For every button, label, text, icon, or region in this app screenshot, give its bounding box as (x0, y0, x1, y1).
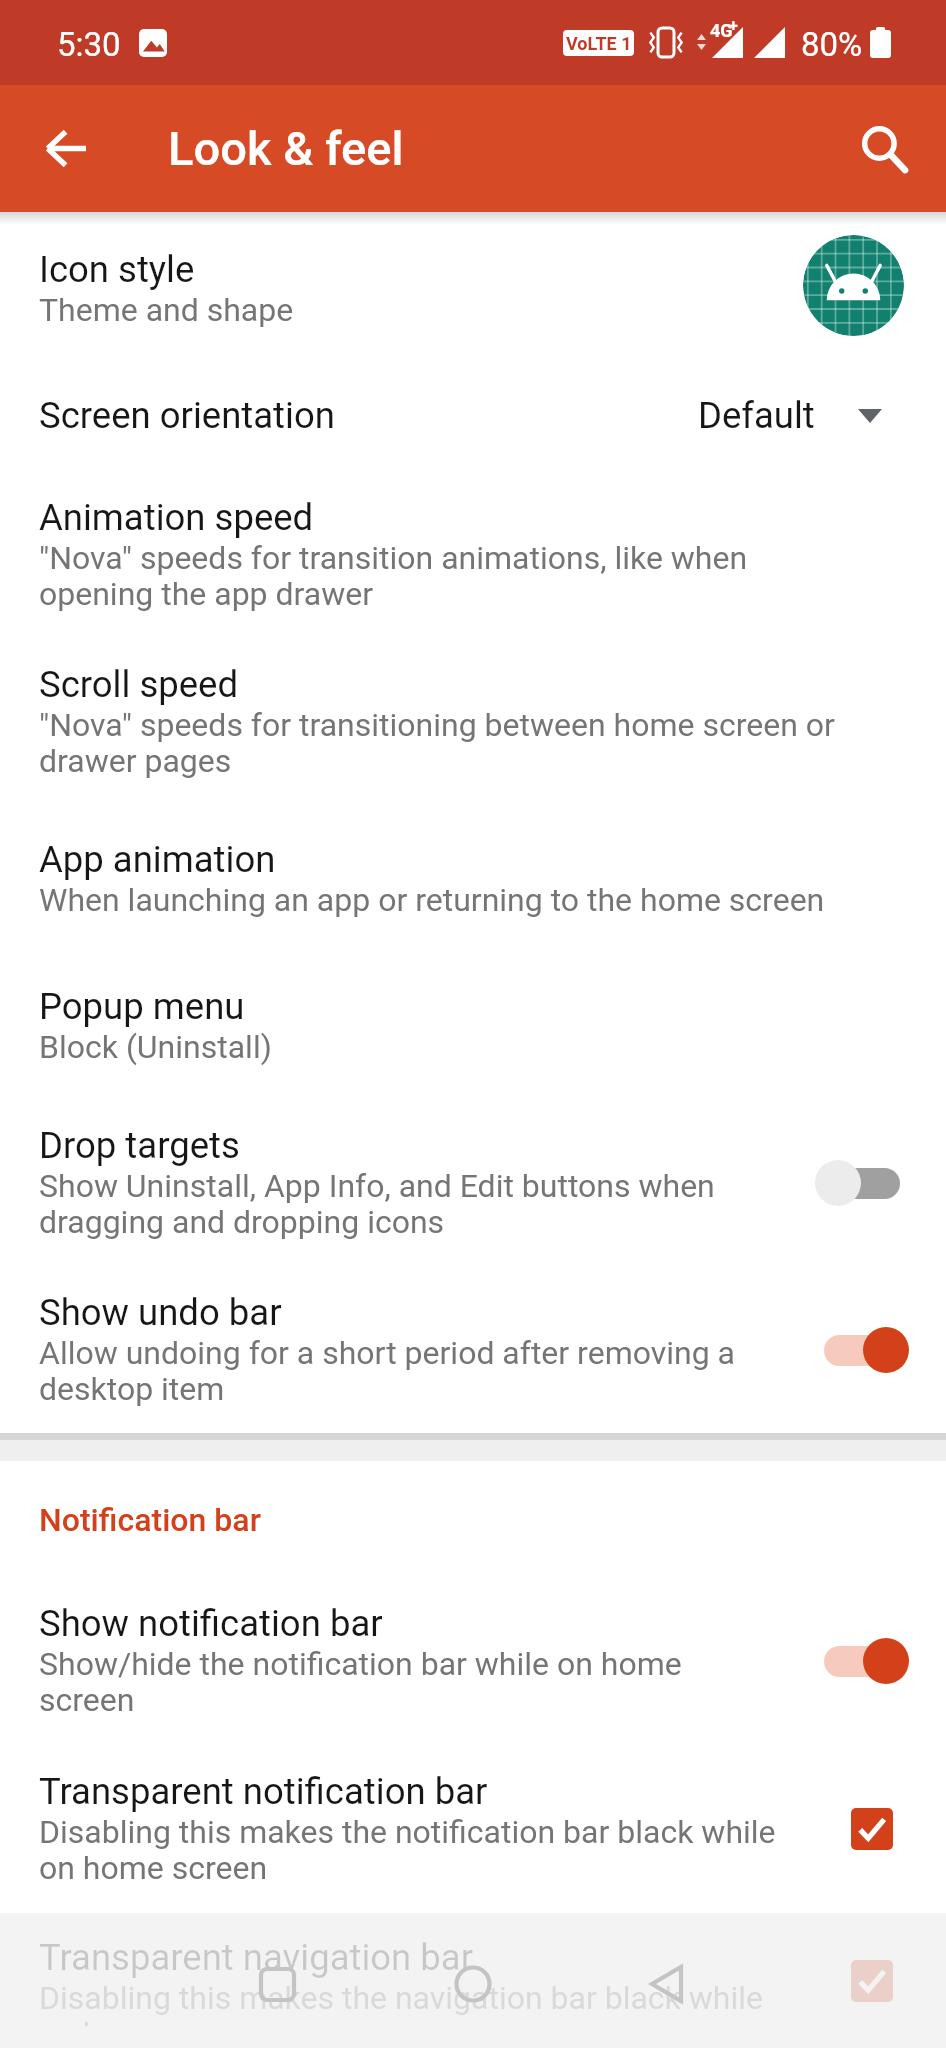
button[interactable]: Toggle on (815, 1314, 909, 1386)
staticText: Disabling this makes the notification ba… (39, 1813, 780, 1887)
staticText: Look & feel (168, 121, 404, 176)
staticText: 80% (801, 25, 863, 64)
staticText: Disabling this makes the navigation bar … (39, 1979, 780, 2026)
button[interactable]: Show undo bar (0, 1263, 946, 1430)
staticText: Animation speed (39, 496, 314, 539)
staticText: Block (Uninstall) (39, 1028, 272, 1066)
button[interactable]: Checkbox (821, 1791, 909, 1867)
button[interactable]: Show notification bar (0, 1559, 946, 1741)
staticText: Transparent notification bar (39, 1770, 488, 1813)
button[interactable]: Toggle off (815, 1147, 909, 1219)
staticText: Transparent navigation bar (39, 1936, 474, 1979)
staticText: Drop targets (39, 1124, 240, 1167)
staticText: App animation (39, 838, 276, 881)
staticText: Show notification bar (39, 1602, 383, 1645)
staticText: Default (698, 394, 815, 437)
staticText: Scroll speed (39, 663, 239, 706)
staticText: Icon style (39, 248, 195, 291)
button[interactable]: Icon style (0, 225, 946, 363)
staticText: Notification bar (39, 1501, 261, 1539)
staticText: "Nova" speeds for transitioning between … (39, 706, 851, 780)
button[interactable]: Back (0, 85, 125, 212)
staticText: Screen orientation (39, 394, 335, 437)
staticText: VoLTE 1 (566, 33, 632, 54)
button[interactable]: Checkbox (821, 1943, 909, 2019)
staticText: Show/hide the notification bar while on … (39, 1645, 780, 1719)
staticText: 4G (710, 20, 733, 41)
button[interactable]: App animation (0, 802, 946, 941)
staticText: Show undo bar (39, 1291, 282, 1334)
button[interactable]: Transparent navigation bar (0, 1909, 946, 2048)
button[interactable]: Scroll speed (0, 635, 946, 802)
staticText: 5:30 (57, 25, 121, 64)
button[interactable]: Popup menu (0, 941, 946, 1088)
button[interactable]: Drop targets (0, 1088, 946, 1263)
button[interactable]: Screen orientation (0, 363, 946, 461)
staticText: When launching an app or returning to th… (39, 881, 825, 919)
button[interactable]: Animation speed (0, 461, 946, 635)
button[interactable]: Transparent notification bar (0, 1741, 946, 1909)
staticText: Allow undoing for a short period after r… (39, 1334, 780, 1408)
staticText: Theme and shape (39, 291, 294, 329)
staticText: Show Uninstall, App Info, and Edit butto… (39, 1167, 780, 1241)
staticText: + (729, 16, 738, 35)
staticText: "Nova" speeds for transition animations,… (39, 539, 851, 613)
button[interactable]: Toggle on (815, 1625, 909, 1697)
staticText: Popup menu (39, 985, 245, 1028)
button[interactable]: Search (821, 86, 946, 211)
